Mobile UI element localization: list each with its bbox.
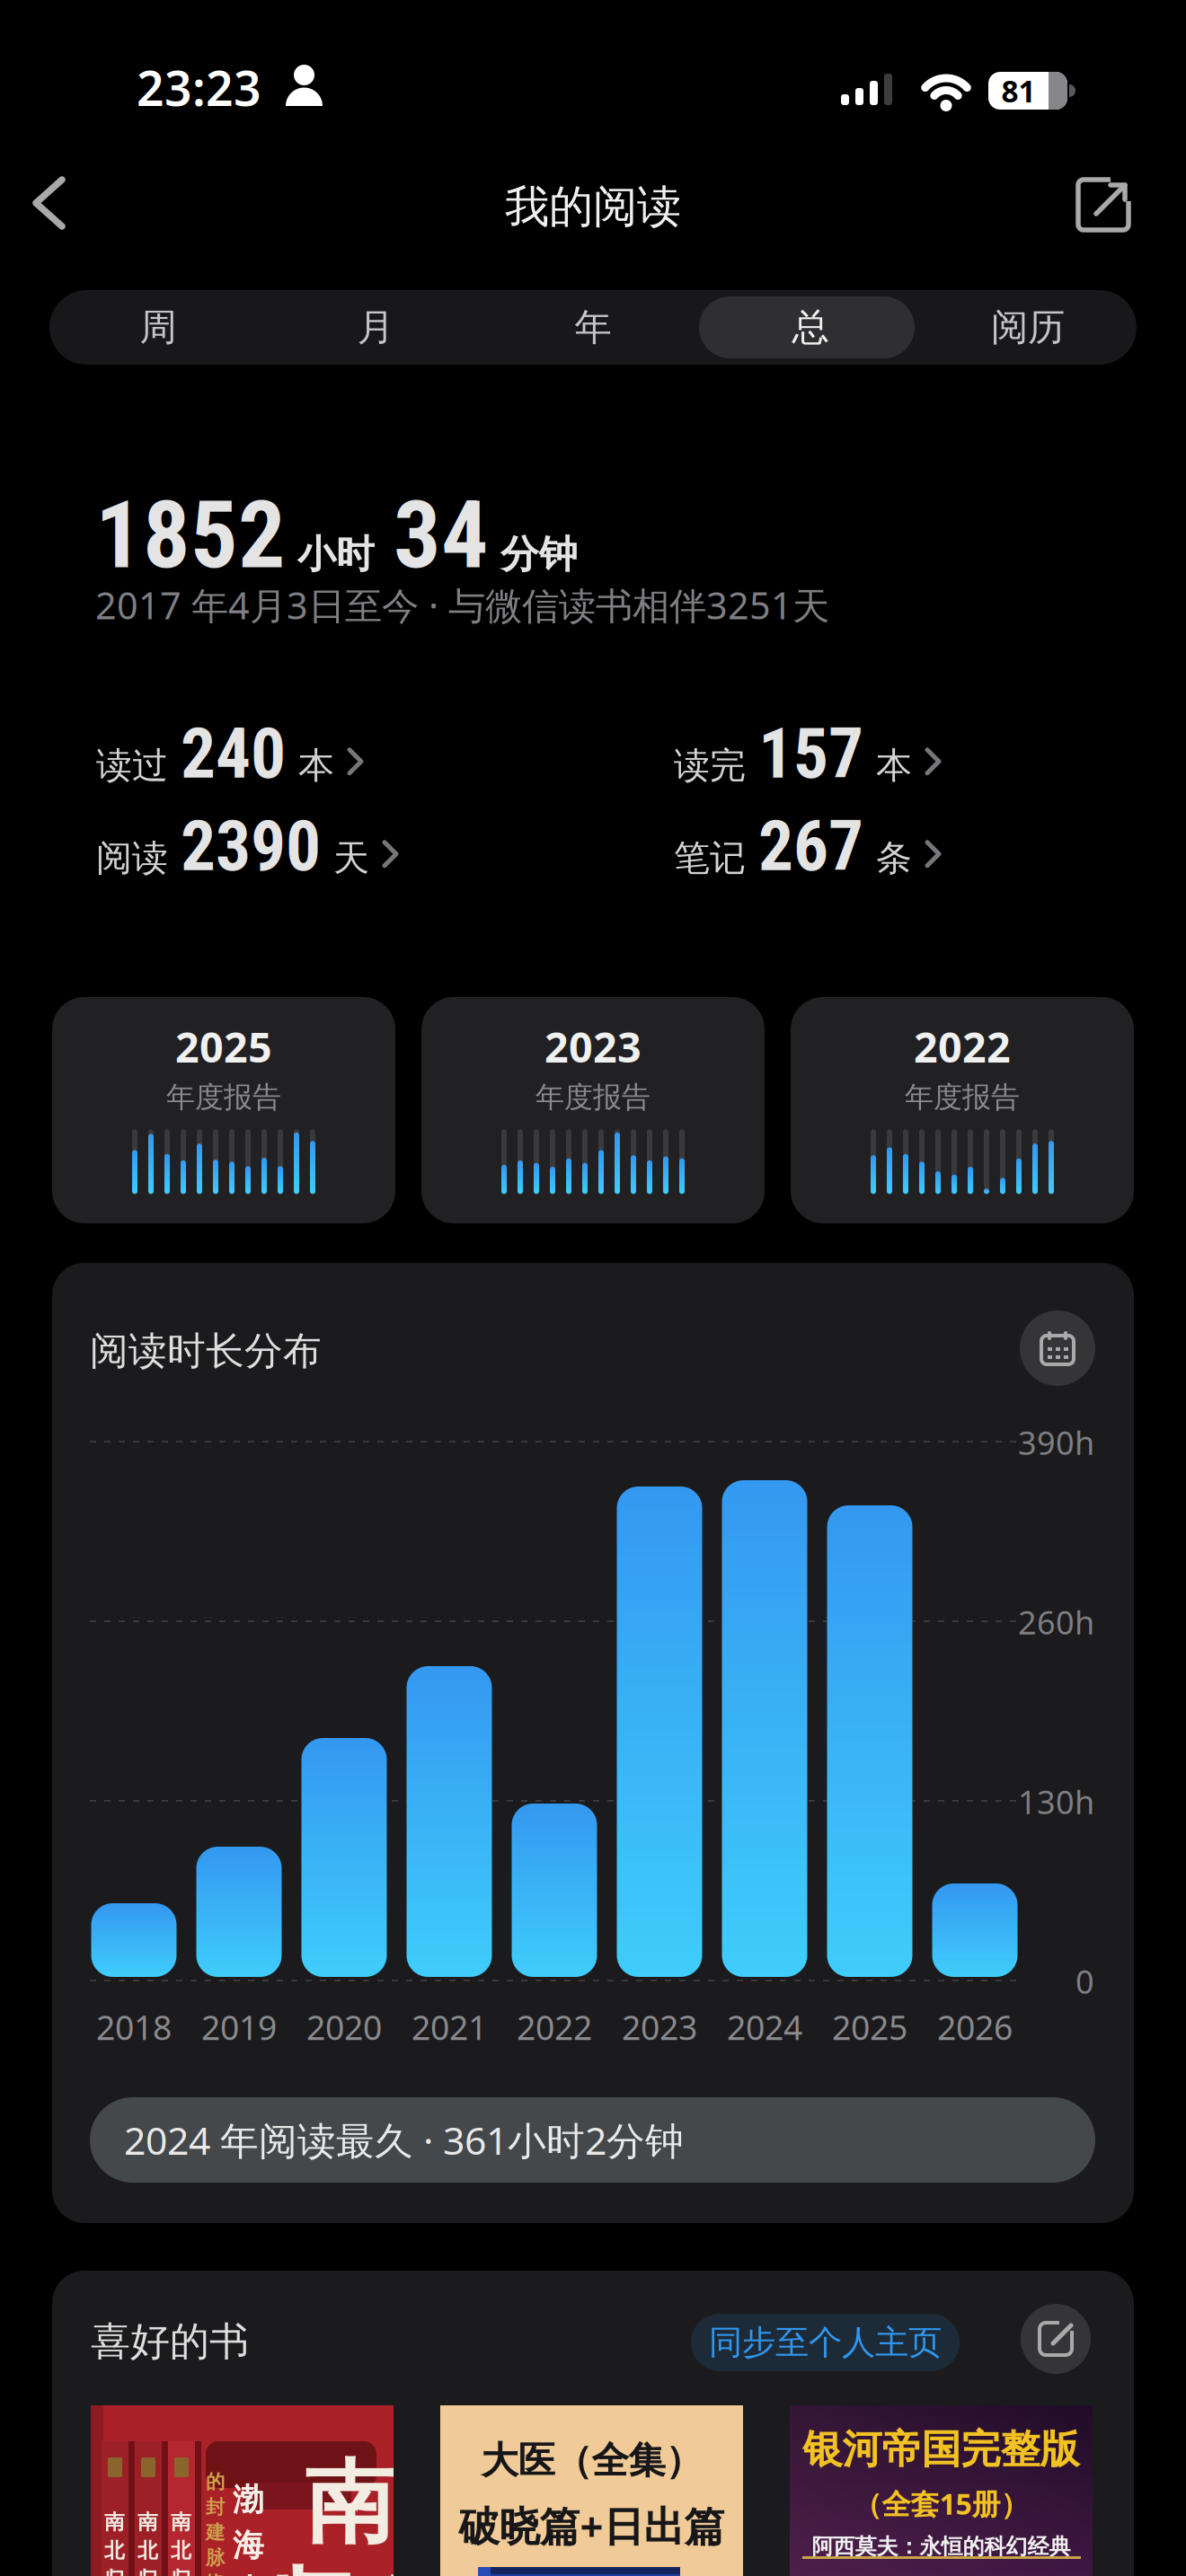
staticText: 260h [1018, 1601, 1094, 1644]
staticText: 2020 [306, 2005, 382, 2049]
staticText: 同步至个人主页 [709, 2322, 942, 2363]
staticText: 2019 [201, 2005, 277, 2049]
staticText: 阅读时长分布 [90, 1328, 322, 1375]
staticText: 本 [876, 744, 912, 788]
staticText: 天 [333, 836, 369, 880]
staticText: 南 [137, 2510, 158, 2535]
button[interactable]: 读完 [674, 713, 943, 795]
staticText: 读完 [674, 744, 746, 788]
staticText: 0 [1075, 1960, 1094, 2003]
staticText: 2022 [517, 2005, 592, 2049]
button[interactable]: 周 [49, 290, 267, 365]
staticText: 年度报告 [166, 1080, 281, 1115]
staticText: 2017 年4月3日至今 · 与微信读书相伴3251天 [95, 580, 829, 630]
staticText: 2018 [96, 2005, 172, 2049]
staticText: 月 [357, 305, 394, 350]
staticText: 封 [206, 2495, 225, 2519]
staticText: 阅读 [96, 836, 168, 880]
staticText: 1852 [95, 481, 286, 590]
staticText: 年度报告 [535, 1080, 651, 1115]
staticText: 读过 [96, 744, 168, 788]
staticText: 总 [792, 305, 829, 350]
button[interactable]: 大医（全集） [440, 2405, 743, 2576]
staticText: 2026 [937, 2005, 1013, 2049]
staticText: 南 [171, 2510, 191, 2535]
staticText: 笔记 [674, 836, 746, 880]
button[interactable]: 同步至个人主页 [52, 2271, 960, 2371]
staticText: 小时 [297, 531, 375, 578]
staticText: （全套15册） [853, 2484, 1029, 2523]
staticText: 喜好的书 [91, 2317, 249, 2366]
staticText: 2021 [412, 2005, 487, 2049]
staticText: 大医（全集） [481, 2438, 702, 2483]
staticText: 2024 [727, 2005, 802, 2049]
button[interactable]: 年 [484, 290, 702, 365]
staticText: 归 [104, 2567, 125, 2576]
staticText: 2023 [544, 1019, 642, 1074]
staticText: 年 [575, 305, 611, 350]
staticText: 2025 [832, 2005, 907, 2049]
staticText: 81 [1001, 71, 1036, 111]
button[interactable]: Calendar [52, 1263, 1095, 1386]
button[interactable]: 2022 [791, 997, 1134, 1223]
staticText: 分钟 [500, 531, 578, 578]
staticText: 南 [104, 2510, 125, 2535]
button[interactable]: Edit [52, 2271, 1091, 2374]
staticText: 157 [758, 713, 863, 795]
staticText: 渤 [233, 2481, 264, 2519]
staticText: 2024 年阅读最久 · 361小时2分钟 [124, 2115, 684, 2165]
staticText: 267 [758, 806, 863, 887]
staticText: 络 [206, 2571, 225, 2576]
staticText: 北 [171, 2538, 191, 2563]
staticText: 240 [181, 713, 286, 795]
staticText: 归 [267, 2556, 357, 2576]
staticText: 的 [206, 2470, 225, 2494]
staticText: 北 [137, 2538, 158, 2563]
button[interactable]: 2025 [52, 997, 395, 1223]
staticText: 北 [362, 2567, 452, 2576]
staticText: 阿西莫夫：永恒的科幻经典 [812, 2533, 1071, 2560]
staticText: 34 [394, 481, 489, 590]
button[interactable]: 银河帝国完整版 [790, 2405, 1093, 2576]
button[interactable]: 2023 [421, 997, 765, 1223]
staticText: 周 [140, 305, 177, 350]
staticText: 建 [206, 2521, 225, 2544]
button[interactable]: 总 [702, 290, 919, 365]
staticText: 2025 [175, 1019, 272, 1074]
staticText: 海 [233, 2526, 264, 2565]
staticText: 23:23 [137, 56, 261, 119]
button[interactable]: 读过 [96, 713, 365, 795]
staticText: 归 [171, 2567, 191, 2576]
staticText: 阅历 [991, 305, 1065, 350]
staticText: 归 [137, 2567, 158, 2576]
staticText: 2022 [914, 1019, 1011, 1074]
staticText: 脉 [206, 2546, 225, 2570]
button[interactable]: Back [0, 0, 72, 234]
staticText: 条 [876, 836, 912, 880]
staticText: 我的阅读 [505, 180, 681, 234]
staticText: 2023 [622, 2005, 697, 2049]
staticText: 130h [1018, 1780, 1094, 1823]
staticText: 390h [1018, 1421, 1094, 1464]
staticText: 年度报告 [905, 1080, 1020, 1115]
button[interactable]: 月 [267, 290, 484, 365]
button[interactable]: 笔记 [674, 806, 943, 887]
staticText: 银河帝国完整版 [803, 2425, 1080, 2474]
staticText: 南 [305, 2448, 394, 2559]
button[interactable]: 阅历 [919, 290, 1137, 365]
staticText: 2390 [181, 806, 321, 887]
staticText: 本 [298, 744, 334, 788]
button[interactable]: 阅读 [96, 806, 400, 887]
staticText: 小 [233, 2572, 264, 2576]
button[interactable]: Share [0, 0, 1130, 232]
staticText: 北 [104, 2538, 125, 2563]
staticText: 破晓篇+日出篇 [459, 2499, 725, 2553]
button[interactable]: 南 [91, 2405, 394, 2576]
